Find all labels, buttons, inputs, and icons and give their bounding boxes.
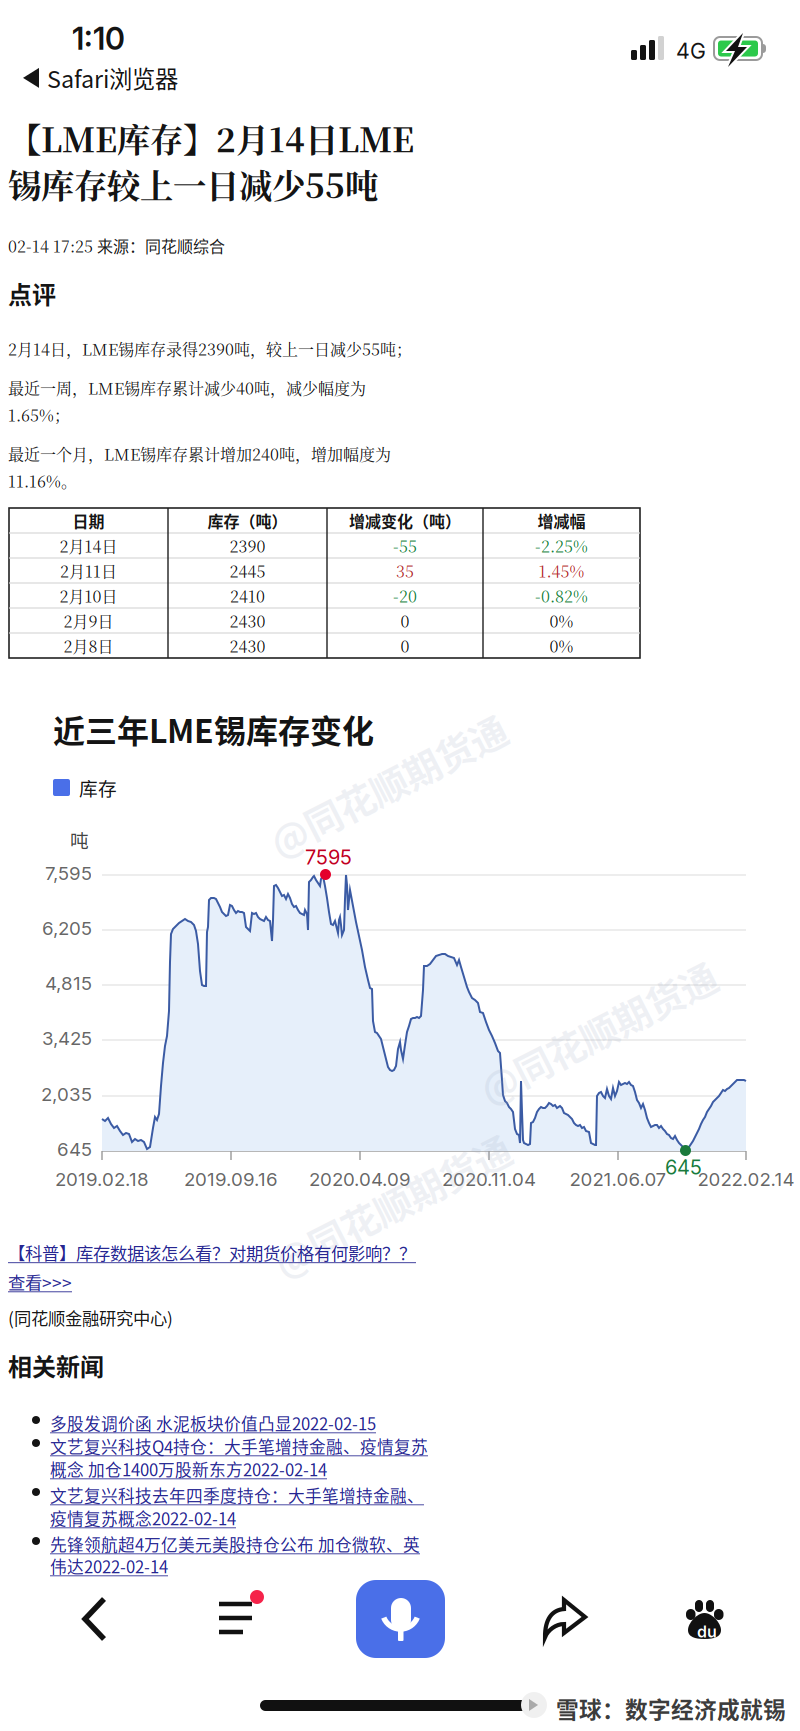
staticText: 增减幅 [537,509,585,532]
staticText: 先锋领航超4万亿美元美股持仓公布 加仓微软、英 [50,1532,420,1556]
staticText: 查看>>> [8,1269,72,1294]
staticText: 相关新闻 [8,1348,104,1383]
staticText: @同花顺期货通 [468,1005,728,1059]
staticText: 7,595 [45,862,92,885]
staticText: 645 [665,1155,702,1179]
staticText: -2.25% [535,534,588,557]
staticText: 11.16%。 [8,469,77,492]
staticText: 点评 [8,276,56,311]
staticText: 2月14日，LME锡库存录得2390吨，较上一日减少55吨； [8,337,412,360]
staticText: 3,425 [42,1027,92,1050]
staticText: 2019.09.16 [184,1168,278,1191]
staticText: 2020.11.04 [442,1168,536,1191]
staticText: 2,035 [41,1083,92,1106]
staticText: 2月9日 [63,609,113,632]
staticText: 库存（吨） [207,509,287,532]
staticText: 2月11日 [60,559,117,582]
staticText: 0 [400,634,409,657]
staticText: -20 [393,584,417,607]
staticText: @同花顺期货通 [258,758,518,812]
staticText: 35 [396,559,414,582]
button[interactable]: Back [0,0,800,1731]
staticText: 疫情复苏概念2022-02-14 [50,1506,236,1530]
staticText: 2月14日 [59,534,117,557]
staticText: 文艺复兴科技去年四季度持仓：大手笔增持金融、 [50,1483,424,1507]
staticText: 最近一个月，LME锡库存累计增加240吨，增加幅度为 [8,442,391,465]
staticText: 2445 [229,559,265,582]
staticText: 库存 [79,774,117,801]
staticText: 0% [549,634,573,657]
staticText: 最近一周，LME锡库存累计减少40吨，减少幅度为 [8,376,366,399]
staticText: 锡库存较上一日减少55吨 [8,160,378,208]
staticText: 多股发调价函 水泥板块价值凸显2022-02-15 [50,1411,376,1435]
staticText: 2410 [230,584,265,607]
staticText: du [697,1622,717,1641]
staticText: 增减变化（吨） [349,509,461,532]
staticText: 6,205 [42,917,92,940]
staticText: Safari浏览器 [47,61,178,95]
staticText: 02-14 17:25 [8,234,97,257]
staticText: 645 [57,1138,92,1161]
staticText: 吨 [70,826,89,853]
button[interactable]: Voice search [0,0,800,1731]
staticText: 4G [676,38,706,64]
staticText: 文艺复兴科技Q4持仓：大手笔增持金融、疫情复苏 [50,1434,428,1458]
staticText: (同花顺金融研究中心) [8,1305,173,1330]
staticText: 2月10日 [59,584,117,607]
staticText: 2月8日 [63,634,113,657]
staticText: -0.82% [535,584,588,607]
button[interactable]: Share [0,0,800,1731]
staticText: 2020.04.09 [309,1168,411,1191]
staticText: 近三年LME锡库存变化 [53,706,374,752]
staticText: 2019.02.18 [55,1168,149,1191]
staticText: 【LME库存】2月14日LME [8,114,414,162]
staticText: 伟达2022-02-14 [50,1554,168,1578]
staticText: 2021.06.07 [569,1168,666,1191]
button[interactable]: Menu [0,0,800,1731]
staticText: 1:10 [72,20,125,57]
staticText: 7595 [305,845,352,869]
staticText: -55 [393,534,417,557]
staticText: 1.65%； [8,403,70,426]
button[interactable]: 【科普】库存数据该怎么看？对期货价格有何影响？？ [8,1240,416,1294]
staticText: 概念 加仓1400万股新东方2022-02-14 [50,1457,327,1481]
staticText: 来源：同花顺综合 [97,234,225,257]
staticText: 2430 [229,609,265,632]
staticText: 0 [400,609,409,632]
staticText: 2390 [229,534,265,557]
button[interactable]: Baidu [0,0,800,1731]
staticText: 日期 [72,509,104,532]
staticText: 雪球：数字经济成就锡 [556,1692,786,1725]
staticText: 4,815 [45,972,92,995]
button[interactable]: Safari浏览器 [23,61,178,95]
staticText: 0% [549,609,573,632]
staticText: @同花顺期货通 [262,1178,522,1232]
staticText: 1.45% [538,559,584,582]
staticText: 2430 [229,634,265,657]
staticText: 【科普】库存数据该怎么看？对期货价格有何影响？？ [8,1240,416,1265]
staticText: 2022.02.14 [697,1168,794,1191]
